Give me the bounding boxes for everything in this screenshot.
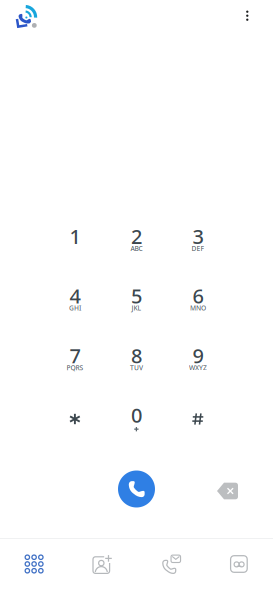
button[interactable]: Backspace <box>207 475 247 507</box>
button[interactable]: 7 <box>45 333 105 377</box>
staticText: 2 <box>131 223 142 249</box>
button[interactable]: 9 <box>168 333 228 377</box>
button[interactable]: 1 <box>45 214 105 258</box>
button[interactable]: 8 <box>106 333 166 377</box>
staticText: GHI <box>69 304 81 312</box>
button[interactable]: 5 <box>106 274 166 318</box>
staticText: DEF <box>191 244 204 253</box>
staticText: TUV <box>130 363 143 372</box>
button[interactable]: 4 <box>45 274 105 318</box>
staticText: 1 <box>69 223 80 249</box>
staticText: MNO <box>190 304 206 312</box>
staticText: ABC <box>130 244 142 253</box>
staticText: 4 <box>69 282 80 309</box>
staticText: 3 <box>192 223 203 249</box>
staticText: 7 <box>69 342 80 369</box>
button[interactable]: Call <box>118 470 155 507</box>
button[interactable]: Voicemail <box>205 539 273 589</box>
staticText: JKL <box>131 304 141 312</box>
staticText: PQRS <box>66 363 83 372</box>
staticText: 5 <box>131 282 142 309</box>
staticText: WXYZ <box>189 363 207 372</box>
button[interactable]: 0 <box>106 393 166 437</box>
button[interactable]: 3 <box>168 214 228 258</box>
button[interactable] <box>45 393 105 437</box>
button[interactable]: Keypad <box>0 539 68 589</box>
button[interactable]: Dialer <box>14 4 40 30</box>
staticText: 8 <box>131 342 142 369</box>
button[interactable]: 6 <box>168 274 228 318</box>
staticText: 6 <box>192 282 203 309</box>
button[interactable]: More options <box>233 2 261 30</box>
button[interactable]: 2 <box>106 214 166 258</box>
staticText: 9 <box>192 342 203 369</box>
button[interactable] <box>168 393 228 437</box>
staticText: 0 <box>131 402 142 428</box>
button[interactable]: Contacts <box>68 539 136 589</box>
button[interactable]: Recents <box>137 539 205 589</box>
